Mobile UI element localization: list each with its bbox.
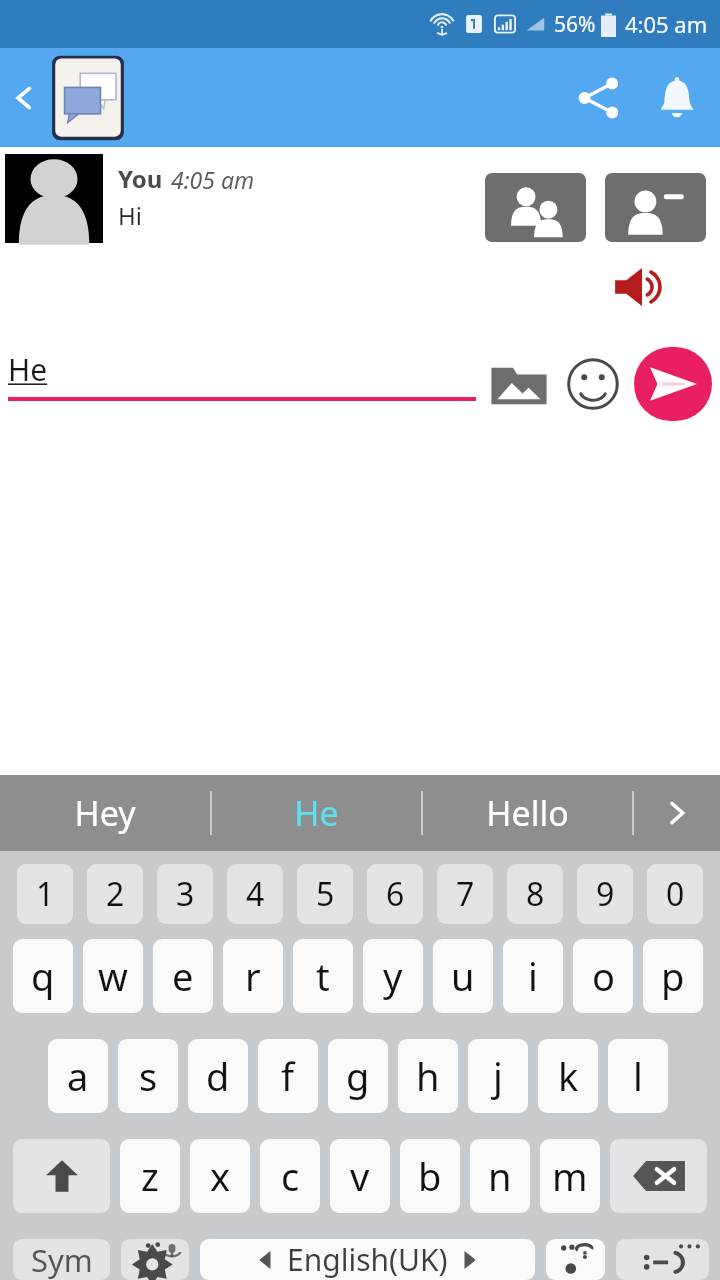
staticText: l xyxy=(633,1050,643,1102)
staticText: p xyxy=(661,950,685,1002)
staticText: Hello xyxy=(486,790,569,836)
staticText: t xyxy=(316,950,330,1002)
staticText: a xyxy=(67,1050,89,1102)
button[interactable]: Backspace xyxy=(610,1139,707,1213)
staticText: v xyxy=(350,1150,370,1202)
staticText: He xyxy=(294,790,339,836)
staticText: i xyxy=(528,950,538,1002)
button[interactable]: w xyxy=(83,939,143,1013)
button[interactable]: Shift xyxy=(13,1139,110,1213)
button[interactable]: Settings xyxy=(121,1239,189,1280)
staticText: k xyxy=(558,1050,579,1102)
staticText: q xyxy=(31,950,55,1002)
button[interactable]: i xyxy=(503,939,563,1013)
button[interactable]: More suggestions xyxy=(634,775,720,851)
button[interactable]: r xyxy=(223,939,283,1013)
button[interactable]: App icon xyxy=(49,54,127,142)
staticText: He xyxy=(8,349,48,390)
staticText: 7 xyxy=(456,872,475,916)
button[interactable]: m xyxy=(540,1139,600,1213)
staticText: u xyxy=(451,950,475,1002)
button[interactable]: j xyxy=(468,1039,528,1113)
staticText: f xyxy=(281,1050,295,1102)
button[interactable]: x xyxy=(190,1139,250,1213)
button[interactable]: 3 xyxy=(157,864,213,924)
button[interactable]: Remove participant xyxy=(605,173,706,242)
button[interactable]: z xyxy=(120,1139,180,1213)
staticText: 4:05 am xyxy=(171,164,255,195)
button[interactable]: q xyxy=(13,939,73,1013)
button[interactable]: n xyxy=(470,1139,530,1213)
staticText: s xyxy=(139,1050,158,1102)
button[interactable]: p xyxy=(643,939,703,1013)
button[interactable]: c xyxy=(260,1139,320,1213)
button[interactable]: English(UK) xyxy=(200,1239,535,1280)
staticText: m xyxy=(552,1150,588,1202)
staticText: 4:05 am xyxy=(625,9,708,39)
button[interactable]: 8 xyxy=(507,864,563,924)
staticText: j xyxy=(493,1050,503,1102)
button[interactable]: 6 xyxy=(367,864,423,924)
staticText: 4 xyxy=(246,872,265,916)
button[interactable]: y xyxy=(363,939,423,1013)
staticText: Hi xyxy=(118,199,142,232)
button[interactable]: e xyxy=(153,939,213,1013)
button[interactable]: 4 xyxy=(227,864,283,924)
button[interactable]: Play sound xyxy=(612,257,672,317)
button[interactable]: k xyxy=(538,1039,598,1113)
button[interactable]: Notifications xyxy=(644,65,710,131)
button[interactable]: s xyxy=(118,1039,178,1113)
staticText: 8 xyxy=(526,872,545,916)
button[interactable]: Hey xyxy=(0,775,210,851)
staticText: 0 xyxy=(666,872,685,916)
button[interactable]: 9 xyxy=(577,864,633,924)
button[interactable]: g xyxy=(328,1039,388,1113)
staticText: 5 xyxy=(316,872,335,916)
staticText: 6 xyxy=(386,872,405,916)
staticText: Sym xyxy=(31,1239,93,1280)
staticText: 9 xyxy=(596,872,615,916)
staticText: o xyxy=(592,950,615,1002)
button[interactable]: Sym xyxy=(13,1239,110,1280)
button[interactable]: 2 xyxy=(87,864,143,924)
staticText: English(UK) xyxy=(287,1239,448,1280)
staticText: b xyxy=(418,1150,442,1202)
button[interactable]: Back xyxy=(0,74,48,122)
staticText: 56% xyxy=(554,10,596,39)
button[interactable]: Add participants xyxy=(485,173,586,242)
button[interactable]: 0 xyxy=(647,864,703,924)
staticText: n xyxy=(488,1150,512,1202)
staticText: c xyxy=(281,1150,300,1202)
button[interactable]: u xyxy=(433,939,493,1013)
button[interactable]: f xyxy=(258,1039,318,1113)
staticText: 3 xyxy=(176,872,195,916)
staticText: z xyxy=(141,1150,159,1202)
button[interactable]: b xyxy=(400,1139,460,1213)
staticText: You xyxy=(118,162,163,195)
button[interactable]: Hello xyxy=(423,775,632,851)
button[interactable]: 5 xyxy=(297,864,353,924)
button[interactable]: o xyxy=(573,939,633,1013)
button[interactable]: Emoticons xyxy=(616,1239,709,1280)
button[interactable]: Emoji xyxy=(562,353,624,415)
button[interactable]: a xyxy=(48,1039,108,1113)
button[interactable]: Share xyxy=(566,65,632,131)
staticText: e xyxy=(172,950,194,1002)
button[interactable]: v xyxy=(330,1139,390,1213)
button[interactable]: d xyxy=(188,1039,248,1113)
staticText: d xyxy=(206,1050,230,1102)
button[interactable]: 7 xyxy=(437,864,493,924)
button[interactable]: Period xyxy=(546,1239,605,1280)
button[interactable]: 1 xyxy=(17,864,73,924)
staticText: 1 xyxy=(36,872,55,916)
button[interactable]: h xyxy=(398,1039,458,1113)
staticText: 2 xyxy=(106,872,125,916)
button[interactable]: Attach image xyxy=(488,353,550,415)
button[interactable]: t xyxy=(293,939,353,1013)
button[interactable]: He xyxy=(212,775,421,851)
staticText: w xyxy=(98,950,128,1002)
staticText: x xyxy=(210,1150,231,1202)
button[interactable]: l xyxy=(608,1039,668,1113)
button[interactable]: Send xyxy=(634,347,712,421)
staticText: y xyxy=(383,950,403,1002)
